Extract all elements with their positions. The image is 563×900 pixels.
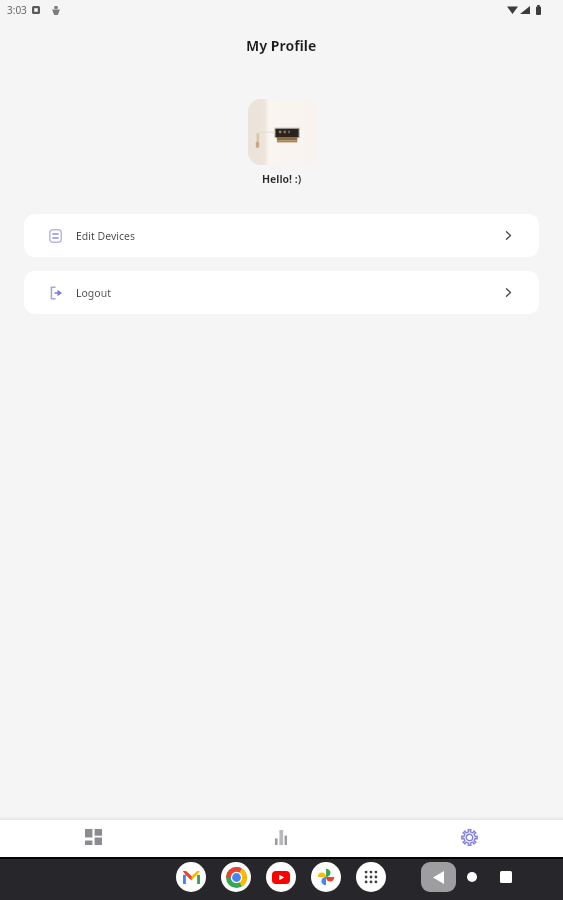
button[interactable]: Recents <box>494 862 518 892</box>
staticText: Logout <box>76 286 111 300</box>
staticText: My Profile <box>246 36 317 55</box>
button[interactable]: App 1 <box>221 862 251 892</box>
staticText: Edit Devices <box>76 229 135 243</box>
button[interactable]: Edit Devices <box>24 214 539 257</box>
button[interactable] <box>248 99 316 165</box>
button[interactable]: Settings <box>375 820 563 854</box>
button[interactable]: Statistics <box>187 820 375 854</box>
button[interactable]: App 0 <box>176 862 206 892</box>
button[interactable]: App 4 <box>356 862 386 892</box>
button[interactable]: Back <box>421 862 456 892</box>
button[interactable]: App 3 <box>311 862 341 892</box>
staticText: Hello! :) <box>262 172 302 186</box>
button[interactable]: App 2 <box>266 862 296 892</box>
button[interactable]: Home <box>460 862 484 892</box>
staticText: 3:03 <box>7 3 27 17</box>
button[interactable]: Dashboard <box>0 820 187 854</box>
button[interactable]: Logout <box>24 271 539 314</box>
